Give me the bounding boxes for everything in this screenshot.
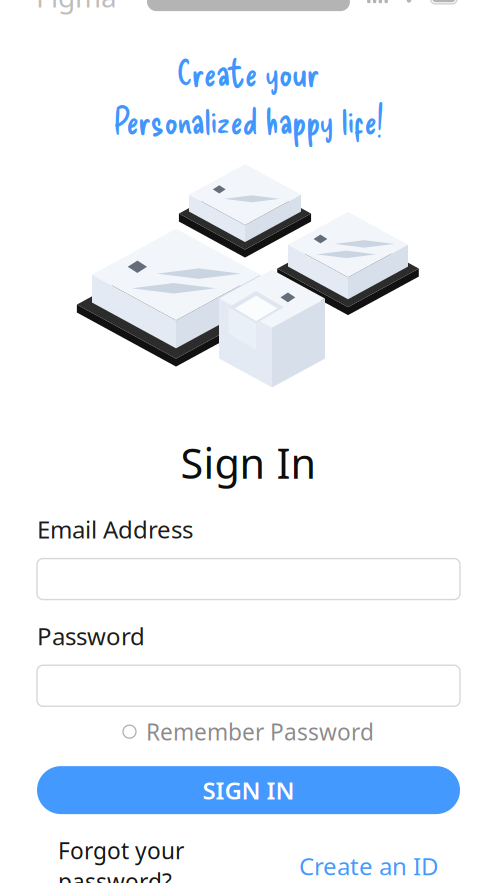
staticText: Personalized happy life!	[113, 98, 383, 142]
staticText: Password	[37, 619, 145, 652]
staticText: Sign In	[180, 435, 316, 491]
staticText: SIGN IN	[202, 774, 294, 806]
button[interactable]: Forgot your password?	[58, 830, 184, 883]
staticText: Remember Password	[146, 716, 374, 747]
button[interactable]: Email Address	[37, 558, 460, 599]
staticText: Create your	[177, 50, 320, 93]
button[interactable]: SIGN IN	[37, 766, 460, 814]
staticText: Figma	[36, 0, 117, 16]
staticText: Email Address	[37, 513, 193, 545]
staticText: Create an ID	[299, 850, 439, 882]
button[interactable]: Password	[37, 665, 460, 706]
button[interactable]: Remember Password	[37, 711, 460, 752]
button[interactable]: Create an ID	[299, 845, 439, 883]
staticText: Forgot your password?	[58, 835, 184, 883]
